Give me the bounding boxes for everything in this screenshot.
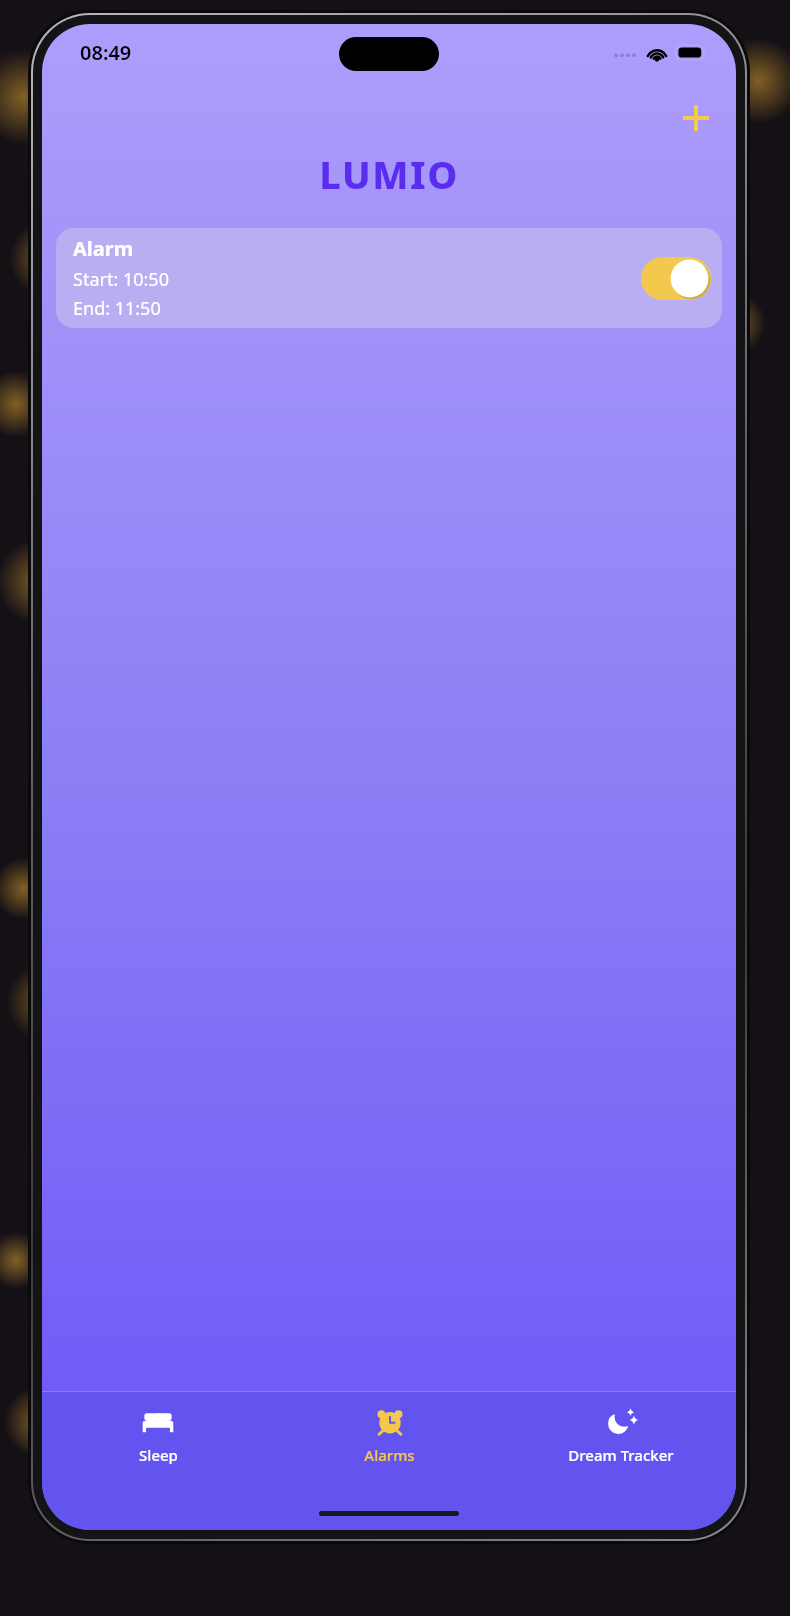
- button[interactable]: Alarms: [274, 1392, 505, 1465]
- button[interactable]: Add alarm: [670, 92, 722, 144]
- staticText: End: 11:50: [73, 296, 161, 321]
- staticText: 08:49: [80, 39, 132, 66]
- staticText: Alarms: [364, 1445, 415, 1465]
- staticText: LUMIO: [42, 148, 736, 200]
- button[interactable]: Alarm enabled toggle: [640, 256, 712, 300]
- staticText: Sleep: [139, 1445, 178, 1465]
- staticText: Start: 10:50: [73, 267, 169, 292]
- staticText: Dream Tracker: [568, 1445, 674, 1465]
- staticText: Alarm: [73, 235, 134, 262]
- button[interactable]: Alarm: [56, 228, 722, 328]
- button[interactable]: Dream Tracker: [505, 1392, 736, 1465]
- button[interactable]: Sleep: [42, 1392, 274, 1465]
